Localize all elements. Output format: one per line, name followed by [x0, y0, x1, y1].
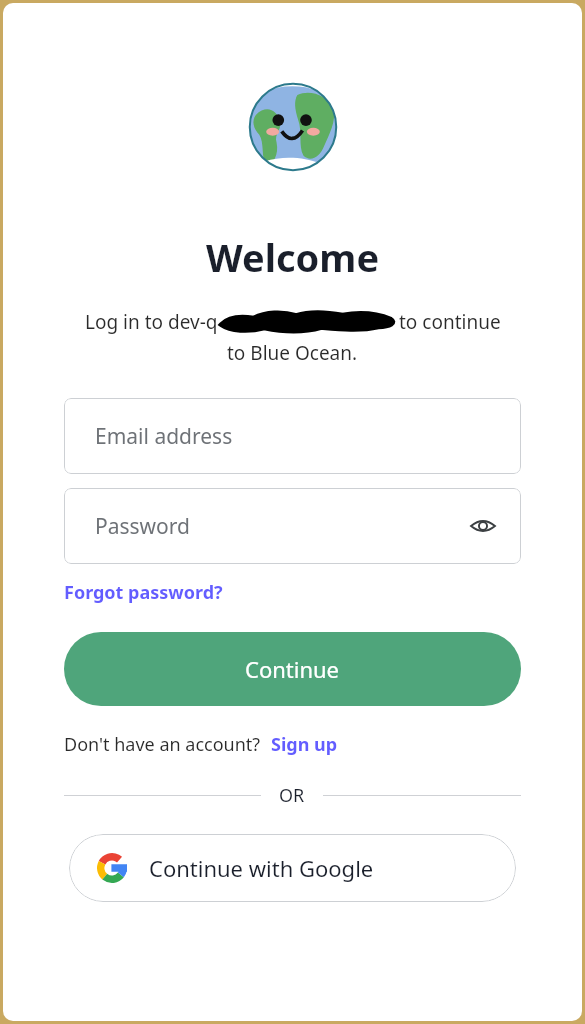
staticText: to Blue Ocean.: [227, 340, 358, 366]
staticText: Welcome: [206, 231, 380, 283]
staticText: Email address: [95, 422, 233, 451]
staticText: Continue with Google: [149, 853, 374, 883]
staticText: Sign up: [271, 732, 338, 757]
staticText: to continue: [399, 309, 501, 335]
button[interactable]: Email address: [64, 398, 521, 474]
staticText: OR: [279, 783, 305, 808]
staticText: Continue: [245, 654, 340, 684]
staticText: Don't have an account?: [64, 732, 261, 757]
button[interactable]: Password: [64, 488, 521, 564]
staticText: Forgot password?: [64, 580, 223, 605]
button[interactable]: Continue with Google: [69, 834, 516, 902]
staticText: Password: [95, 512, 190, 541]
button[interactable]: Sign up: [271, 732, 338, 757]
button[interactable]: Show password: [465, 508, 501, 544]
button[interactable]: Forgot password?: [64, 580, 223, 605]
button[interactable]: Continue: [64, 632, 521, 706]
staticText: Log in to dev-q: [85, 309, 218, 335]
